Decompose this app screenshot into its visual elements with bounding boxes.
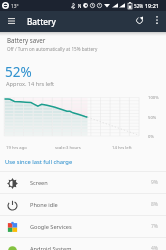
staticText: 9% (151, 179, 159, 186)
staticText: 100% (148, 95, 159, 101)
staticText: 14 hrs left (112, 145, 132, 151)
button[interactable]: More options (148, 11, 165, 28)
staticText: 52% (5, 63, 32, 81)
button[interactable]: Open navigation menu (2, 11, 21, 30)
button[interactable]: Google Services (0, 216, 166, 237)
staticText: Google Services (30, 223, 72, 231)
button[interactable]: Phone idle (0, 194, 166, 215)
button[interactable]: Use since last full charge (0, 155, 166, 170)
staticText: 4% (151, 245, 159, 250)
staticText: Use since last full charge (5, 158, 73, 166)
staticText: Screen (30, 179, 48, 187)
staticText: N (78, 3, 82, 9)
staticText: Approx. 14 hrs left (6, 80, 55, 88)
staticText: 13° (11, 3, 19, 10)
staticText: scale:3 hours (55, 145, 81, 151)
staticText: 50% (148, 115, 157, 121)
button[interactable]: Refresh (130, 11, 149, 30)
staticText: 19:21 (145, 2, 159, 9)
button[interactable]: Android System (0, 238, 166, 250)
staticText: Battery (27, 16, 56, 27)
staticText: 19 hrs ago (6, 145, 27, 151)
staticText: Android System (30, 245, 72, 250)
staticText: Off / Turn on automatically at 15% batte… (7, 46, 98, 52)
staticText: 7% (151, 223, 159, 230)
staticText: 0% (148, 134, 154, 140)
staticText: Battery saver (7, 36, 46, 44)
button[interactable]: Screen (0, 172, 166, 193)
button[interactable]: Battery saver (0, 33, 166, 54)
staticText: 52% (134, 3, 144, 9)
staticText: 8% (151, 201, 159, 208)
staticText: Phone idle (30, 201, 58, 209)
